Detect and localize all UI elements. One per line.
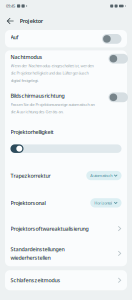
button[interactable]: Schlafenszeitmodus: [5, 270, 127, 290]
staticText: 09:45: [6, 3, 15, 9]
button[interactable]: Projektorsoftwareaktualisierung: [5, 216, 127, 241]
button[interactable]: Projektorsonal: [5, 189, 127, 216]
staticText: Trapezkorrektur: [10, 172, 50, 179]
staticText: Passen Sie die Projektionsanzeige automa…: [10, 102, 94, 114]
staticText: Wenn der Nachtmodus eingeschaltet ist, w…: [10, 63, 93, 83]
staticText: Horizontal: [94, 200, 112, 205]
button[interactable]: Auf: [5, 30, 127, 47]
staticText: Projektorsonal: [10, 199, 45, 206]
button[interactable]: Projektorhelligkeit: [5, 119, 127, 162]
staticText: Standardeinstellungen: [10, 246, 64, 253]
staticText: Auf: [10, 34, 18, 41]
button[interactable]: Trapezkorrektur: [5, 162, 127, 189]
staticText: wiederherstellen: [10, 254, 50, 261]
staticText: Nachtmodus: [10, 53, 42, 60]
staticText: Projektorhelligkeit: [10, 128, 53, 135]
button[interactable]: Bildschirmausrichtung: [5, 89, 127, 119]
button[interactable]: Zurück: [5, 16, 16, 26]
staticText: Projektor: [20, 17, 43, 25]
staticText: Automatisch: [90, 173, 112, 178]
button[interactable]: Standardeinstellungen: [5, 241, 127, 266]
staticText: Schlafenszeitmodus: [10, 277, 60, 284]
staticText: Projektorsoftwareaktualisierung: [10, 225, 88, 232]
button[interactable]: Nachtmodus: [5, 50, 127, 89]
staticText: Bildschirmausrichtung: [10, 92, 64, 99]
